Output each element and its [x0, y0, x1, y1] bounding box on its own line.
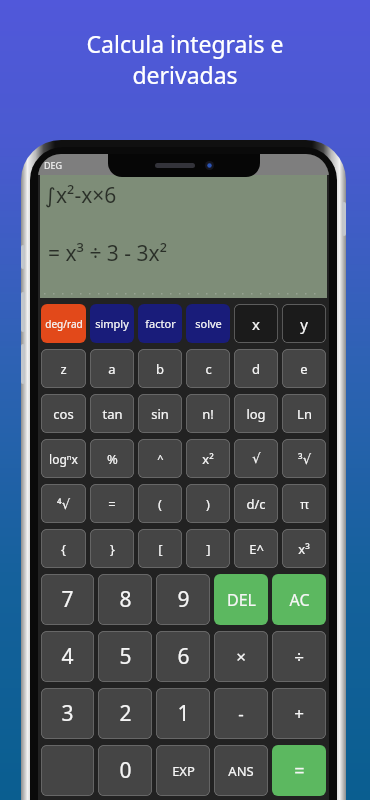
button[interactable]: tan — [90, 394, 134, 433]
button[interactable]: AC — [272, 574, 326, 625]
staticText: Ln — [297, 405, 312, 423]
button[interactable]: c — [186, 349, 230, 388]
button[interactable]: log — [234, 394, 278, 433]
button[interactable]: 0 — [98, 745, 152, 796]
staticText: log — [246, 405, 266, 423]
staticText: × — [236, 645, 246, 668]
staticText: sin — [151, 405, 169, 423]
button[interactable]: 4 — [41, 631, 94, 682]
button[interactable]: ( — [138, 484, 182, 523]
button[interactable]: E^ — [234, 529, 278, 568]
button[interactable]: ⁴√ — [41, 484, 86, 523]
staticText: } — [110, 540, 115, 558]
button[interactable]: deg/rad — [41, 304, 86, 343]
staticText: EXP — [172, 762, 195, 780]
staticText: 4 — [61, 642, 74, 671]
button[interactable]: DEG — [38, 154, 329, 175]
button[interactable]: ] — [186, 529, 230, 568]
button[interactable]: 1 — [156, 688, 210, 739]
button[interactable]: blank key — [41, 745, 94, 796]
button[interactable]: d — [234, 349, 278, 388]
button[interactable]: 6 — [156, 631, 210, 682]
staticText: n! — [202, 405, 214, 423]
staticText: solve — [195, 316, 222, 331]
button[interactable]: z — [41, 349, 86, 388]
button[interactable]: factor — [138, 304, 182, 343]
button[interactable]: = — [272, 745, 326, 796]
button[interactable]: π — [282, 484, 326, 523]
button[interactable]: Ln — [282, 394, 326, 433]
staticText: logⁿx — [49, 451, 78, 467]
staticText: Calcula integrais e derivadas — [20, 28, 350, 91]
button[interactable]: d/c — [234, 484, 278, 523]
button[interactable]: 3 — [41, 688, 94, 739]
button[interactable]: cos — [41, 394, 86, 433]
button[interactable]: ³√ — [282, 439, 326, 478]
button[interactable]: ) — [186, 484, 230, 523]
staticText: DEG — [44, 159, 63, 171]
staticText: 1 — [177, 699, 190, 728]
button[interactable]: n! — [186, 394, 230, 433]
staticText: - — [238, 702, 244, 725]
staticText: ] — [206, 540, 211, 558]
button[interactable]: % — [90, 439, 134, 478]
staticText: % — [107, 450, 118, 468]
staticText: 6 — [177, 642, 190, 671]
button[interactable]: 8 — [98, 574, 152, 625]
staticText: E^ — [249, 540, 264, 558]
button[interactable]: [ — [138, 529, 182, 568]
button[interactable]: ÷ — [272, 631, 326, 682]
button[interactable]: simply — [90, 304, 134, 343]
staticText: b — [156, 360, 164, 378]
button[interactable]: { — [41, 529, 86, 568]
button[interactable]: logⁿx — [41, 439, 86, 478]
staticText: d/c — [246, 495, 266, 513]
button[interactable]: √ — [234, 439, 278, 478]
staticText: ( — [158, 495, 162, 513]
staticText: a — [108, 360, 116, 378]
button[interactable]: b — [138, 349, 182, 388]
button[interactable]: sin — [138, 394, 182, 433]
staticText: = — [108, 495, 116, 513]
button[interactable]: EXP — [156, 745, 210, 796]
staticText: x³ — [298, 540, 310, 558]
button[interactable]: 9 — [156, 574, 210, 625]
staticText: simply — [95, 316, 129, 331]
button[interactable]: × — [214, 631, 268, 682]
button[interactable]: 2 — [98, 688, 152, 739]
staticText: ÷ — [294, 645, 304, 668]
button[interactable]: 5 — [98, 631, 152, 682]
button[interactable]: + — [272, 688, 326, 739]
staticText: [ — [158, 540, 163, 558]
staticText: π — [300, 495, 309, 513]
button[interactable]: x³ — [282, 529, 326, 568]
button[interactable]: } — [90, 529, 134, 568]
staticText: = x³ ÷ 3 - 3x² — [48, 239, 168, 268]
button[interactable]: DEL — [214, 574, 268, 625]
staticText: √ — [252, 451, 261, 466]
button[interactable]: solve — [186, 304, 230, 343]
staticText: ^ — [157, 451, 164, 466]
staticText: y — [300, 314, 308, 334]
staticText: cos — [53, 405, 74, 423]
button[interactable]: x² — [186, 439, 230, 478]
button[interactable]: 7 — [41, 574, 94, 625]
button[interactable]: a — [90, 349, 134, 388]
staticText: ³√ — [298, 450, 311, 468]
staticText: { — [61, 540, 66, 558]
button[interactable]: e — [282, 349, 326, 388]
staticText: 2 — [119, 699, 132, 728]
button[interactable]: ANS — [214, 745, 268, 796]
staticText: factor — [145, 316, 176, 331]
staticText: tan — [102, 405, 123, 423]
button[interactable]: = — [90, 484, 134, 523]
staticText: AC — [289, 589, 310, 611]
button[interactable]: ^ — [138, 439, 182, 478]
staticText: x — [252, 314, 260, 334]
button[interactable]: - — [214, 688, 268, 739]
staticText: c — [205, 360, 212, 378]
staticText: DEL — [227, 589, 256, 611]
button[interactable]: x — [234, 304, 278, 343]
button[interactable]: y — [282, 304, 326, 343]
staticText: ⁴√ — [57, 495, 70, 513]
